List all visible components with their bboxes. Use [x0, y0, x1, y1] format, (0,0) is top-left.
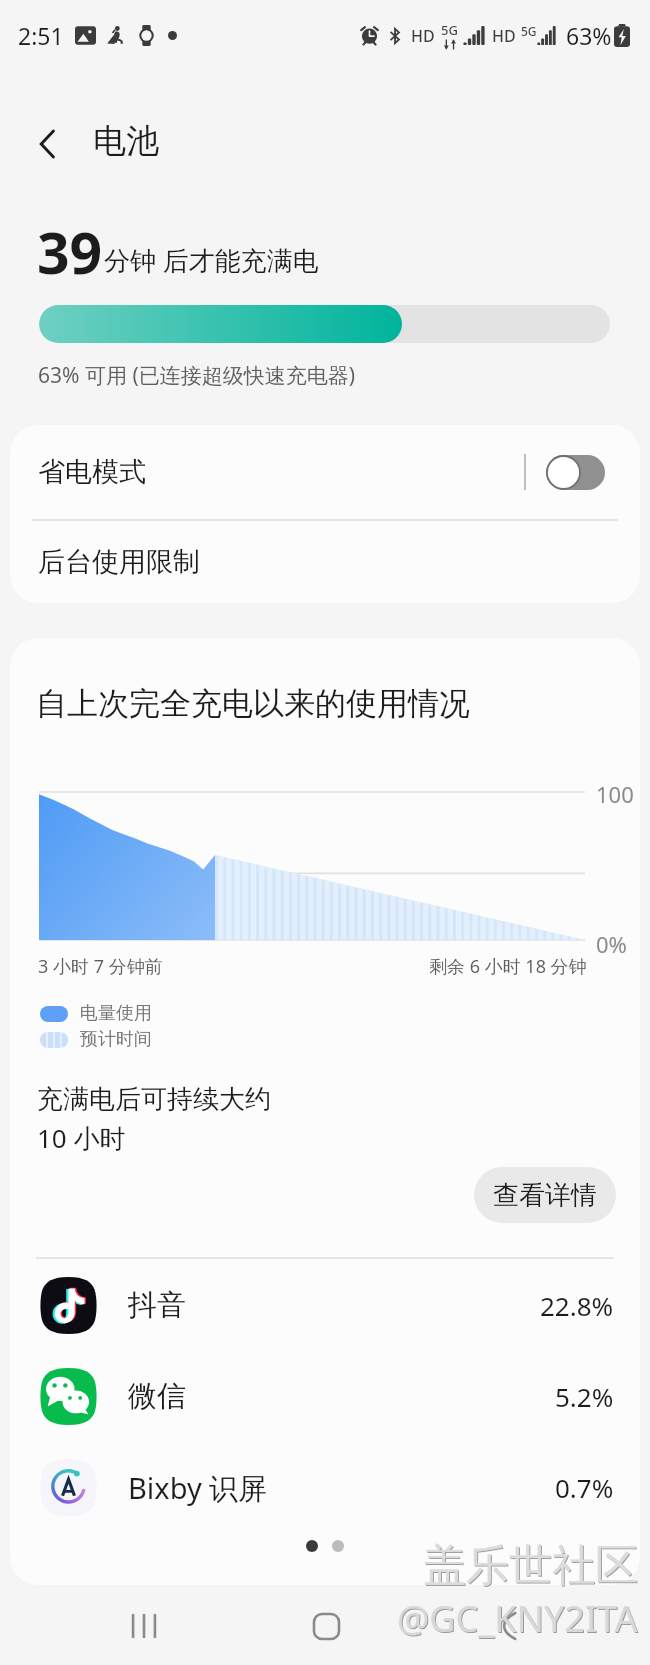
staticText: Bixby 识屏 [128, 1468, 268, 1508]
button[interactable]: 省电模式 [10, 425, 640, 519]
button[interactable]: Recents [108, 1587, 180, 1665]
staticText: 5G [521, 23, 537, 39]
button[interactable]: 查看详情 [474, 1167, 616, 1223]
button[interactable]: Bixby 识屏 [10, 1442, 640, 1533]
staticText: 0.7% [555, 1470, 614, 1505]
staticText: 电池 [93, 120, 159, 162]
staticText: 39 [37, 213, 103, 291]
staticText: 100 [596, 779, 634, 809]
staticText: 省电模式 [38, 455, 146, 489]
staticText: 5.2% [555, 1379, 614, 1414]
staticText: 22.8% [540, 1288, 614, 1323]
button[interactable]: Back [472, 1587, 544, 1665]
button[interactable]: 微信 [10, 1351, 640, 1442]
button[interactable]: Home [290, 1587, 362, 1665]
staticText: 微信 [128, 1378, 186, 1415]
staticText: @GC_KNY2ITA [398, 1595, 639, 1644]
staticText: 5G [441, 21, 458, 39]
staticText: 自上次完全充电以来的使用情况 [36, 684, 470, 723]
staticText: 2:51 [18, 20, 64, 51]
staticText: 预计时间 [80, 1028, 152, 1051]
staticText: 剩余 6 小时 18 分钟 [429, 954, 587, 979]
button[interactable]: Back [20, 116, 76, 172]
staticText: 盖乐世社区 [423, 1539, 638, 1593]
staticText: 抖音 [128, 1287, 186, 1324]
staticText: 63% [566, 20, 612, 51]
staticText: 63% 可用 (已连接超级快速充电器) [38, 361, 355, 390]
staticText: 分钟 后才能充满电 [104, 242, 319, 278]
button[interactable]: 后台使用限制 [10, 520, 640, 603]
button[interactable]: 抖音 [10, 1260, 640, 1351]
staticText: @GC_KNY2ITA [397, 1594, 638, 1643]
staticText: HD [492, 25, 516, 47]
staticText: 电量使用 [80, 1002, 152, 1025]
staticText: 10 小时 [37, 1120, 126, 1156]
staticText: 3 小时 7 分钟前 [38, 954, 163, 979]
staticText: 后台使用限制 [38, 545, 200, 579]
staticText: HD [411, 25, 435, 47]
staticText: 0% [596, 929, 627, 959]
button[interactable]: Power saving mode toggle [546, 455, 605, 490]
staticText: 充满电后可持续大约 [37, 1083, 271, 1116]
staticText: 查看详情 [493, 1179, 597, 1212]
staticText: 盖乐世社区 [424, 1540, 639, 1594]
